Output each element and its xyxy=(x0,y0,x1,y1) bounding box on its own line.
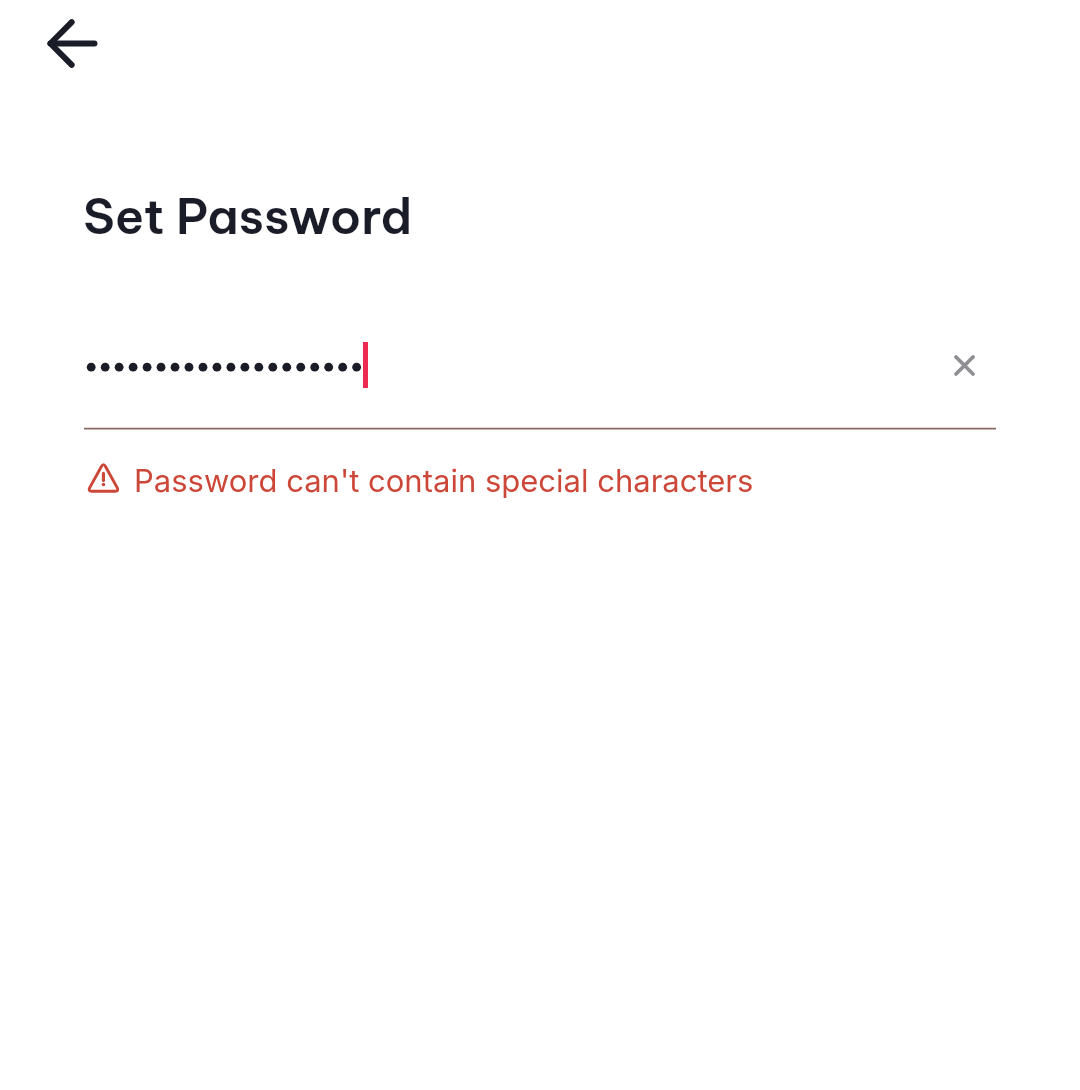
staticText: Password can't contain special character… xyxy=(134,462,754,500)
button[interactable]: Clear text xyxy=(930,331,998,399)
button[interactable]: Back xyxy=(49,18,97,66)
staticText: Set Password xyxy=(83,186,413,247)
